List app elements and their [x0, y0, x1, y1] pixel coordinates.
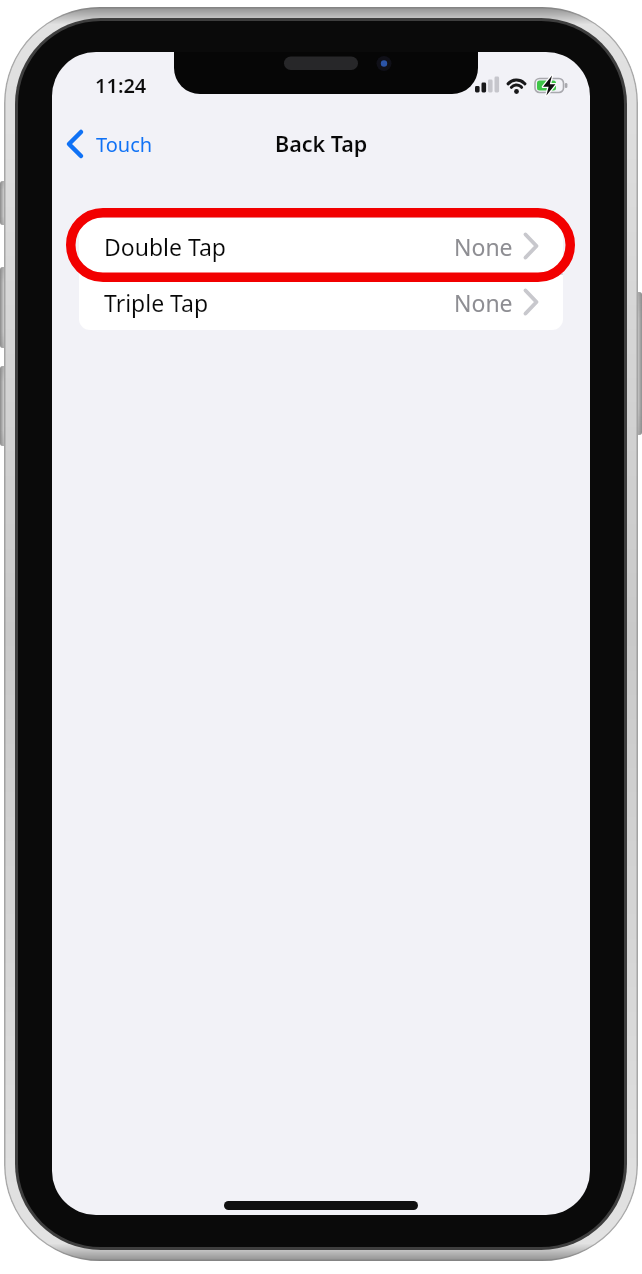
staticText: None	[454, 287, 513, 318]
staticText: 11:24	[95, 72, 147, 99]
staticText: None	[454, 231, 513, 262]
staticText: Double Tap	[104, 231, 226, 262]
button[interactable]: Triple Tap	[79, 274, 563, 330]
button[interactable]: Touch	[60, 126, 180, 162]
button[interactable]: Double Tap	[79, 218, 563, 274]
staticText: Triple Tap	[104, 287, 209, 318]
staticText: Back Tap	[275, 129, 368, 158]
staticText: Touch	[96, 131, 153, 158]
